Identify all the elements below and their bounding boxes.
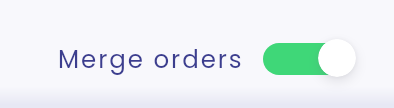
staticText: Merge orders xyxy=(58,42,244,76)
button[interactable]: Merge orders xyxy=(0,0,394,108)
